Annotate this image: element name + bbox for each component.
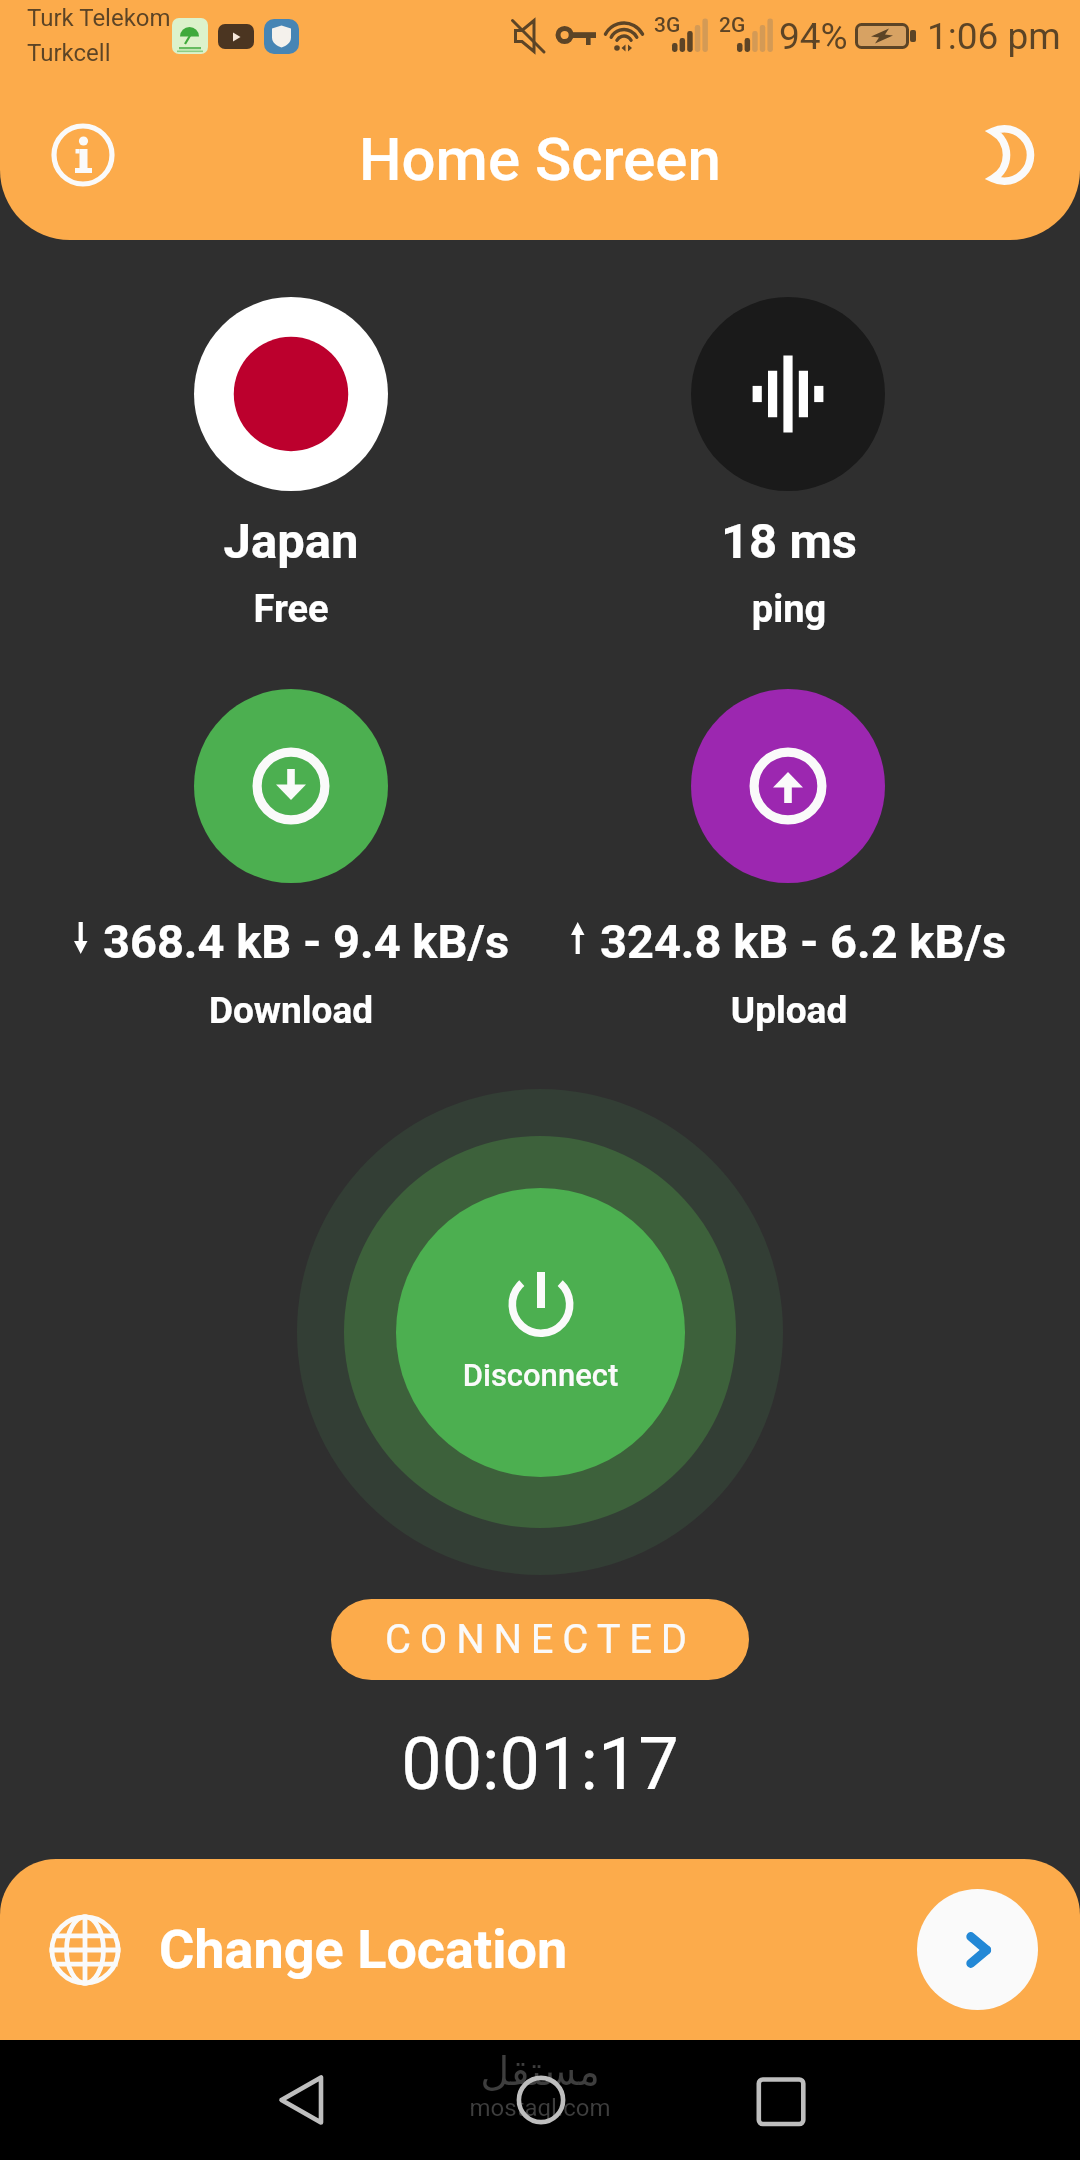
staticText: Japan (0, 513, 582, 570)
button[interactable]: CONNECTED (331, 1599, 749, 1680)
staticText: 18 ms (498, 513, 1080, 570)
staticText: CONNECTED (385, 1616, 696, 1663)
button[interactable]: Back (249, 2055, 351, 2145)
button[interactable]: Change Location (0, 1859, 1080, 2040)
staticText: Disconnect (396, 1357, 685, 1393)
staticText: Free (0, 587, 582, 632)
button[interactable]: Recents (730, 2055, 832, 2145)
button[interactable]: Home (490, 2055, 592, 2145)
staticText: مستقل (0, 2048, 1080, 2095)
button[interactable]: Night mode (956, 107, 1052, 203)
staticText: Upload (498, 989, 1080, 1032)
button[interactable]: Info (35, 107, 131, 203)
staticText: Change Location (159, 1918, 568, 1981)
staticText: 1:06 pm (927, 15, 1061, 58)
staticText: Home Screen (359, 124, 721, 194)
staticText: 94% (779, 15, 848, 58)
staticText: 2G (719, 13, 746, 38)
staticText: Download (0, 989, 582, 1032)
staticText: 324.8 kB - 6.2 kB/s (512, 914, 1080, 969)
staticText: 368.4 kB - 9.4 kB/s (15, 914, 597, 969)
staticText: 00:01:17 (0, 1722, 1080, 1806)
button[interactable]: Disconnect (297, 1089, 783, 1575)
staticText: Turkcell (27, 39, 111, 67)
staticText: ping (498, 587, 1080, 632)
staticText: Turk Telekom (27, 4, 171, 32)
staticText: 3G (654, 13, 681, 38)
staticText: mostaql.com (0, 2094, 1080, 2122)
